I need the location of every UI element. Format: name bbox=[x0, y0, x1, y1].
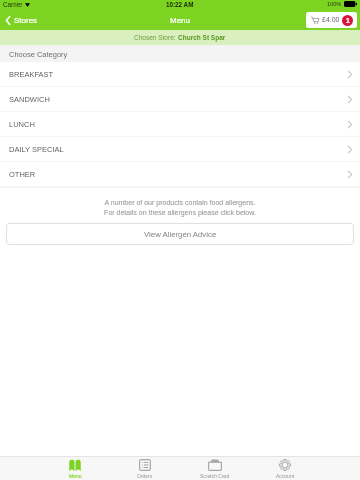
button[interactable]: View Allergen Advice bbox=[6, 223, 354, 245]
button[interactable]: Orders bbox=[110, 457, 180, 480]
staticText: Carrier bbox=[3, 1, 23, 8]
button[interactable]: BREAKFAST bbox=[0, 62, 360, 87]
button[interactable]: LUNCH bbox=[0, 112, 360, 137]
staticText: Menu bbox=[170, 16, 191, 25]
staticText: Chosen Store: bbox=[134, 34, 178, 41]
staticText: For details on these allergens please cl… bbox=[0, 209, 360, 217]
staticText: View Allergen Advice bbox=[144, 230, 217, 239]
staticText: Choose Category bbox=[9, 50, 68, 58]
staticText: Stores bbox=[14, 16, 38, 25]
button[interactable]: £4.00 bbox=[306, 12, 357, 28]
button[interactable]: Scratch Card bbox=[180, 457, 250, 480]
button[interactable]: OTHER bbox=[0, 162, 360, 187]
staticText: OTHER bbox=[9, 170, 36, 178]
staticText: Church St Spar bbox=[178, 34, 226, 41]
staticText: LUNCH bbox=[9, 120, 35, 128]
staticText: BREAKFAST bbox=[9, 70, 54, 78]
button[interactable]: SANDWICH bbox=[0, 87, 360, 112]
button[interactable]: Stores bbox=[0, 12, 44, 30]
staticText: Account bbox=[276, 473, 295, 479]
staticText: DAILY SPECIAL bbox=[9, 145, 64, 153]
staticText: 100% bbox=[327, 1, 342, 7]
staticText: SANDWICH bbox=[9, 95, 50, 103]
staticText: £4.00 bbox=[322, 16, 340, 24]
staticText: 1 bbox=[346, 17, 350, 25]
staticText: Scratch Card bbox=[200, 473, 230, 479]
staticText: Orders bbox=[137, 473, 153, 479]
button[interactable]: DAILY SPECIAL bbox=[0, 137, 360, 162]
staticText: 10:22 AM bbox=[166, 1, 194, 8]
button[interactable]: Menu bbox=[40, 457, 110, 480]
staticText: Menu bbox=[69, 473, 82, 479]
staticText: A number of our products contain food al… bbox=[0, 199, 360, 207]
button[interactable]: Account bbox=[250, 457, 320, 480]
